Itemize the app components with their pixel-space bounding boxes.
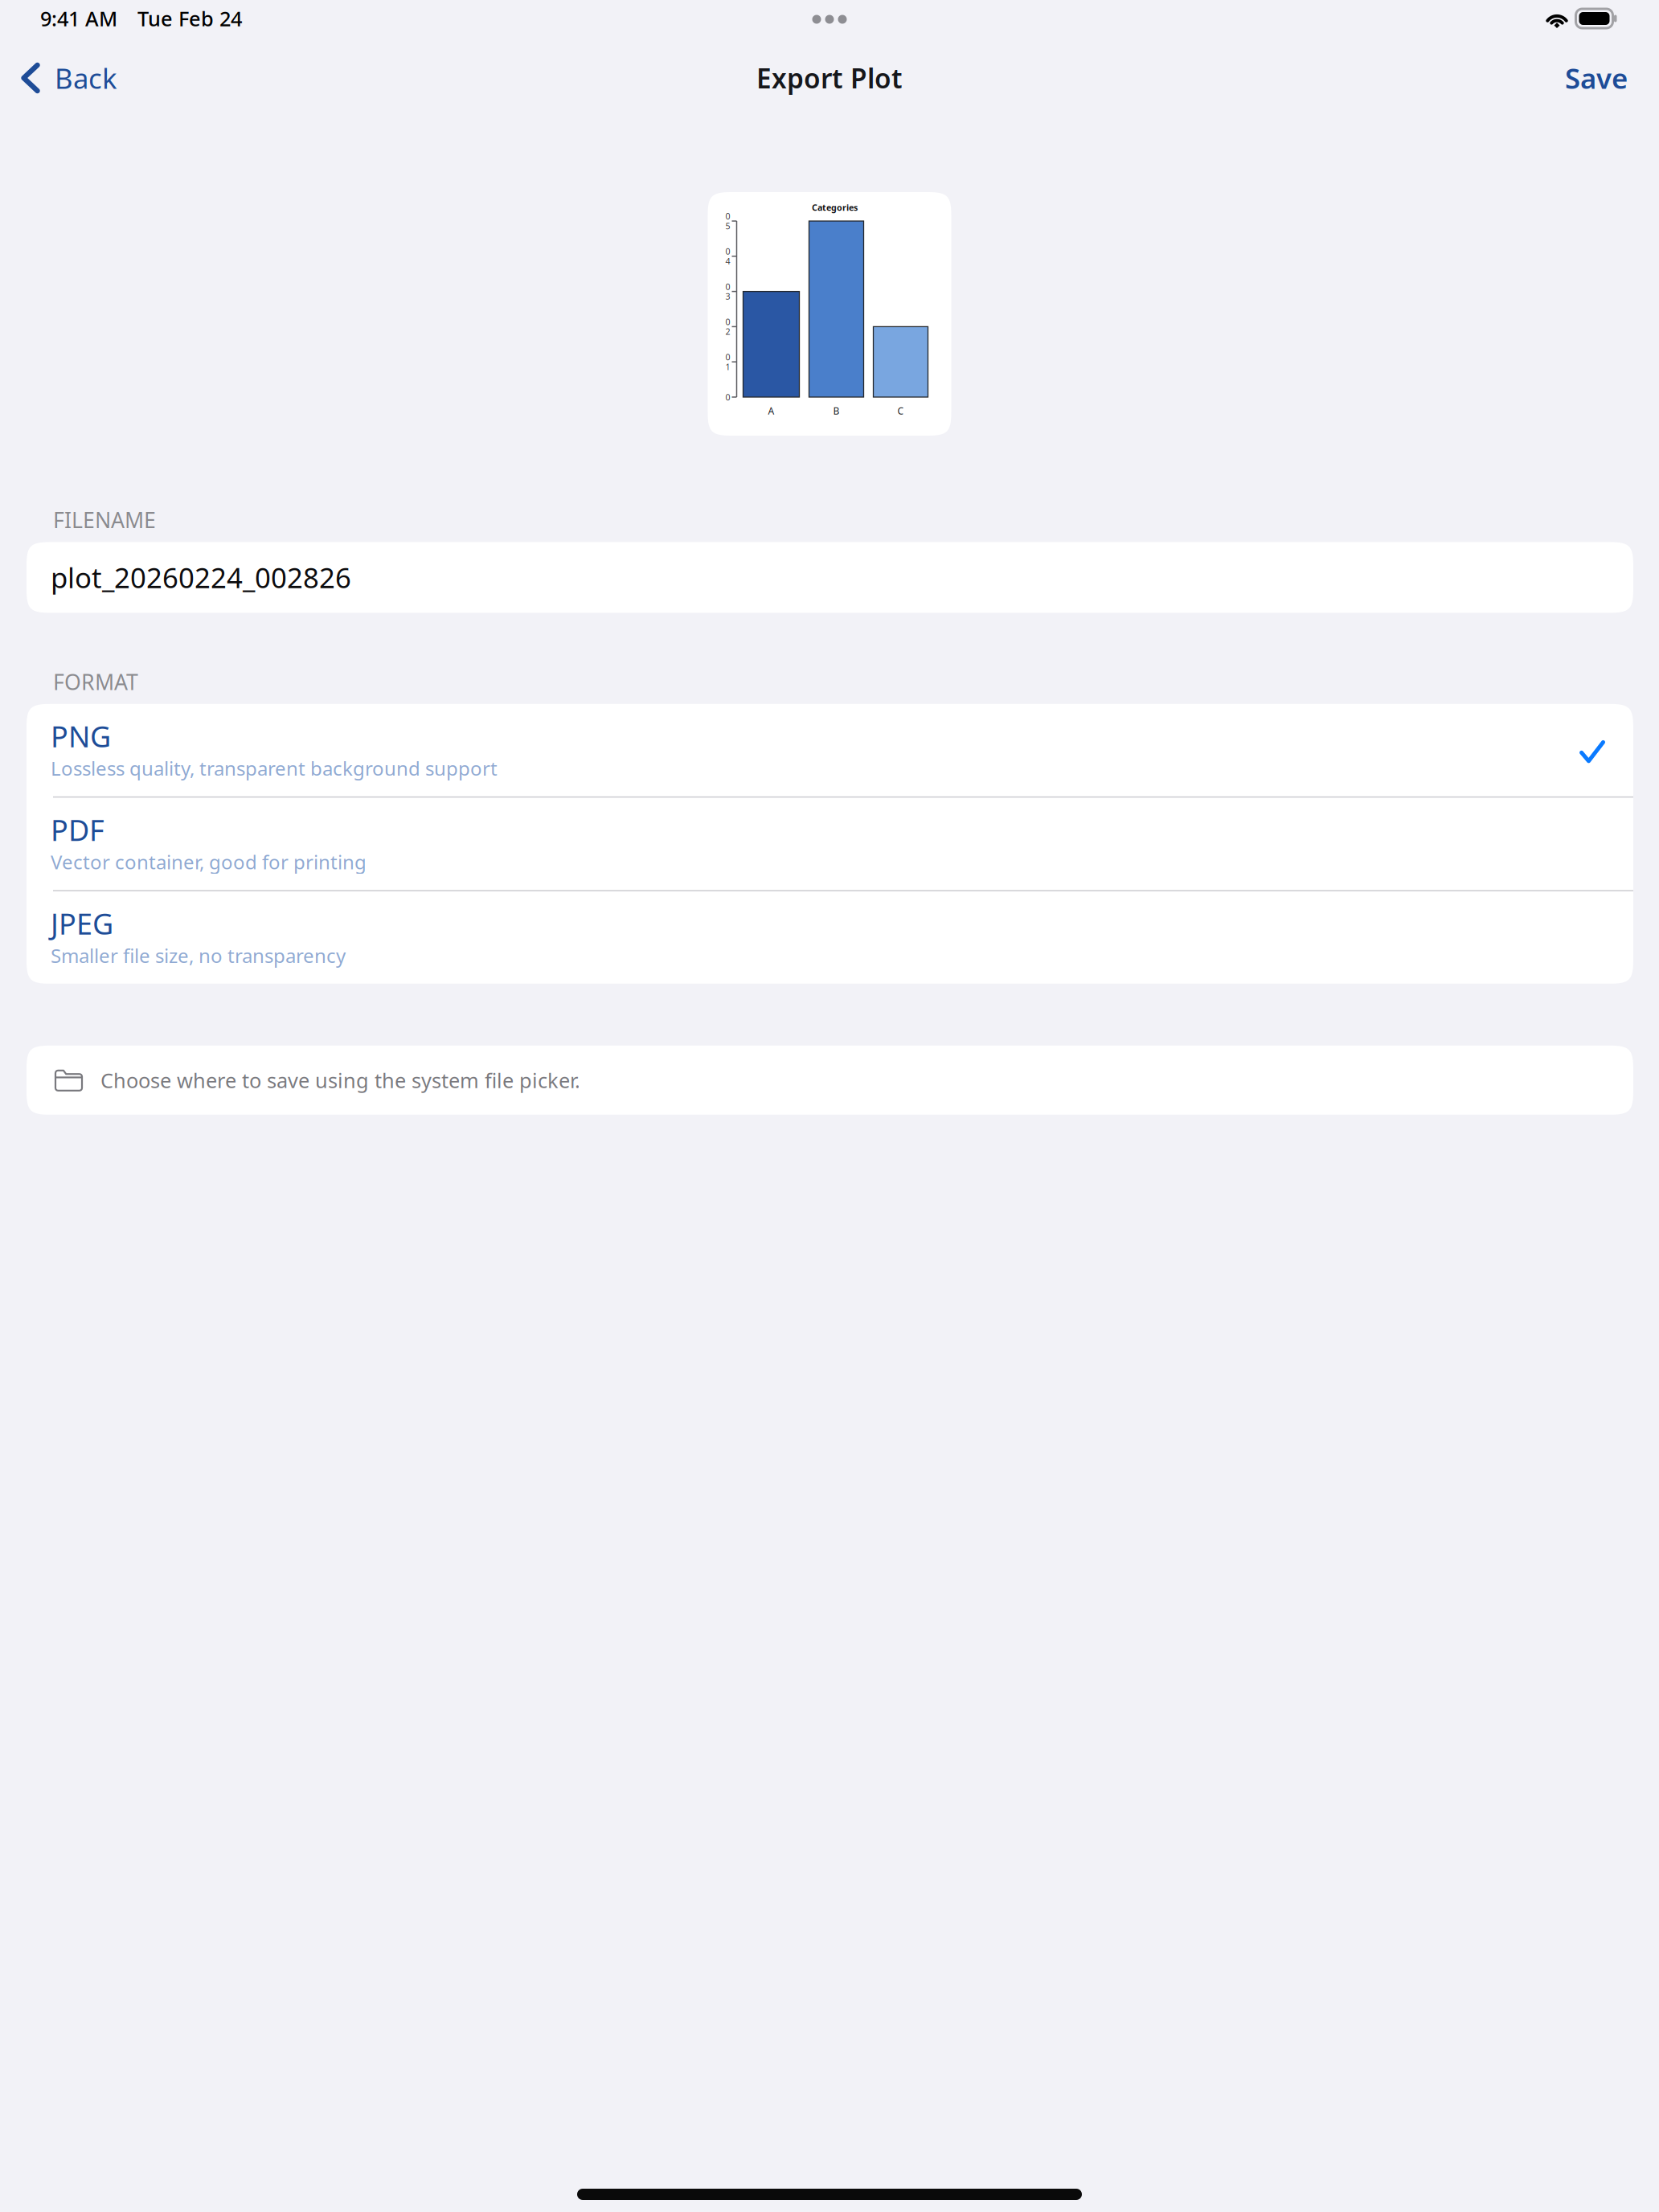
staticText: C xyxy=(897,404,904,417)
staticText: A xyxy=(768,404,774,417)
staticText: Lossless quality, transparent background… xyxy=(51,755,498,781)
staticText: Back xyxy=(55,59,117,96)
staticText: Export Plot xyxy=(756,60,903,96)
staticText: 1 xyxy=(725,361,730,372)
staticText: Tue Feb 24 xyxy=(137,5,242,32)
staticText: plot_20260224_002826 xyxy=(51,559,351,596)
staticText: 0 xyxy=(725,246,730,257)
button[interactable]: Save xyxy=(1546,50,1659,106)
staticText: FORMAT xyxy=(53,667,138,696)
staticText: Choose where to save using the system fi… xyxy=(100,1067,580,1094)
staticText: Vector container, good for printing xyxy=(51,849,367,875)
staticText: PDF xyxy=(51,810,104,849)
staticText: 3 xyxy=(725,291,730,302)
staticText: 2 xyxy=(725,326,730,337)
staticText: 0 xyxy=(725,351,730,363)
staticText: FILENAME xyxy=(53,506,156,534)
staticText: Smaller file size, no transparency xyxy=(51,943,346,968)
staticText: 4 xyxy=(725,255,730,267)
staticText: Categories xyxy=(812,202,858,213)
button[interactable]: Choose where to save using the system fi… xyxy=(27,1046,1633,1115)
staticText: 9:41 AM xyxy=(40,5,117,32)
staticText: 0 xyxy=(725,391,730,403)
staticText: 0 xyxy=(725,281,730,292)
staticText: B xyxy=(833,404,840,417)
button[interactable]: PDF xyxy=(27,798,1633,890)
staticText: PNG xyxy=(51,717,111,755)
button[interactable]: JPEG xyxy=(27,891,1633,984)
staticText: 0 xyxy=(725,210,730,222)
staticText: Save xyxy=(1565,59,1628,96)
staticText: 5 xyxy=(725,220,730,232)
staticText: 0 xyxy=(725,316,730,327)
button[interactable]: Back xyxy=(0,50,133,106)
button[interactable]: PNG xyxy=(27,704,1633,796)
staticText: JPEG xyxy=(51,904,113,943)
button[interactable]: plot_20260224_002826 xyxy=(27,542,1633,613)
